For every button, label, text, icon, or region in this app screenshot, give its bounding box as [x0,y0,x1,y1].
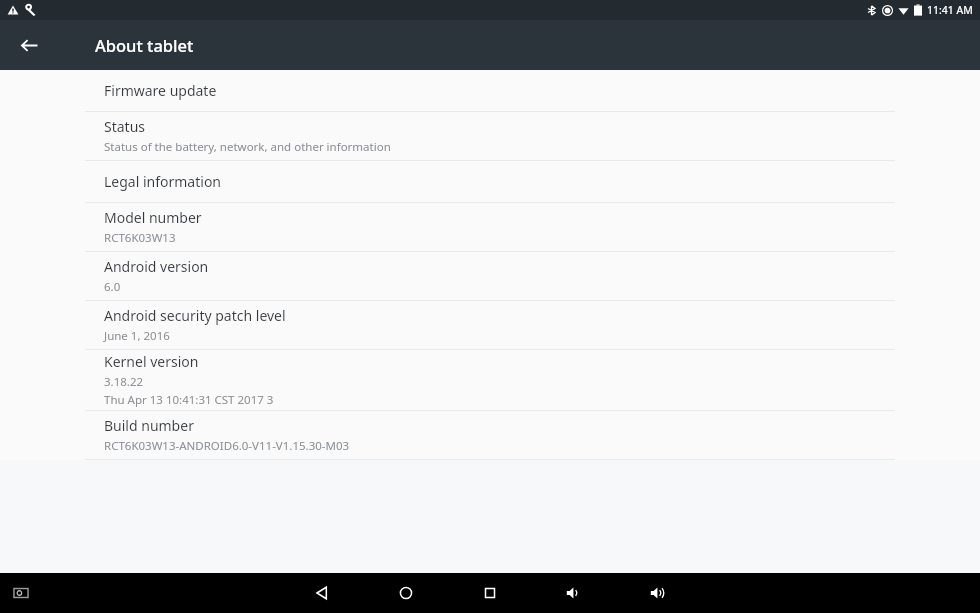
staticText: Status of the battery, network, and othe… [104,139,391,155]
button[interactable]: Android version [0,252,980,300]
staticText: Kernel version [104,352,199,371]
staticText: 6.0 [104,279,121,295]
button[interactable]: Status [0,112,980,160]
button[interactable]: Legal information [0,161,980,202]
staticText: Thu Apr 13 10:41:31 CST 2017 3 [104,392,274,408]
staticText: Android version [104,257,209,276]
staticText: Firmware update [104,81,217,100]
button[interactable]: Android security patch level [0,301,980,349]
button[interactable]: Back [12,28,46,62]
button[interactable]: Recent apps [471,574,509,612]
staticText: Status [104,117,146,136]
button[interactable]: Screenshot [8,580,34,606]
staticText: RCT6K03W13 [104,230,176,246]
staticText: Android security patch level [104,306,286,325]
staticText: June 1, 2016 [104,328,170,344]
staticText: Legal information [104,172,222,191]
staticText: 11:41 AM [927,3,973,17]
staticText: 3.18.22 [104,374,144,390]
button[interactable]: Kernel version [0,350,980,410]
button[interactable]: Back [303,574,341,612]
button[interactable]: Volume down [555,574,593,612]
staticText: About tablet [95,34,194,56]
button[interactable]: Volume up [639,574,677,612]
button[interactable]: Build number [0,411,980,459]
button[interactable]: Home [387,574,425,612]
button[interactable]: Firmware update [0,70,980,111]
staticText: Build number [104,416,194,435]
button[interactable]: Model number [0,203,980,251]
staticText: RCT6K03W13-ANDROID6.0-V11-V1.15.30-M03 [104,438,350,454]
staticText: Model number [104,208,202,227]
